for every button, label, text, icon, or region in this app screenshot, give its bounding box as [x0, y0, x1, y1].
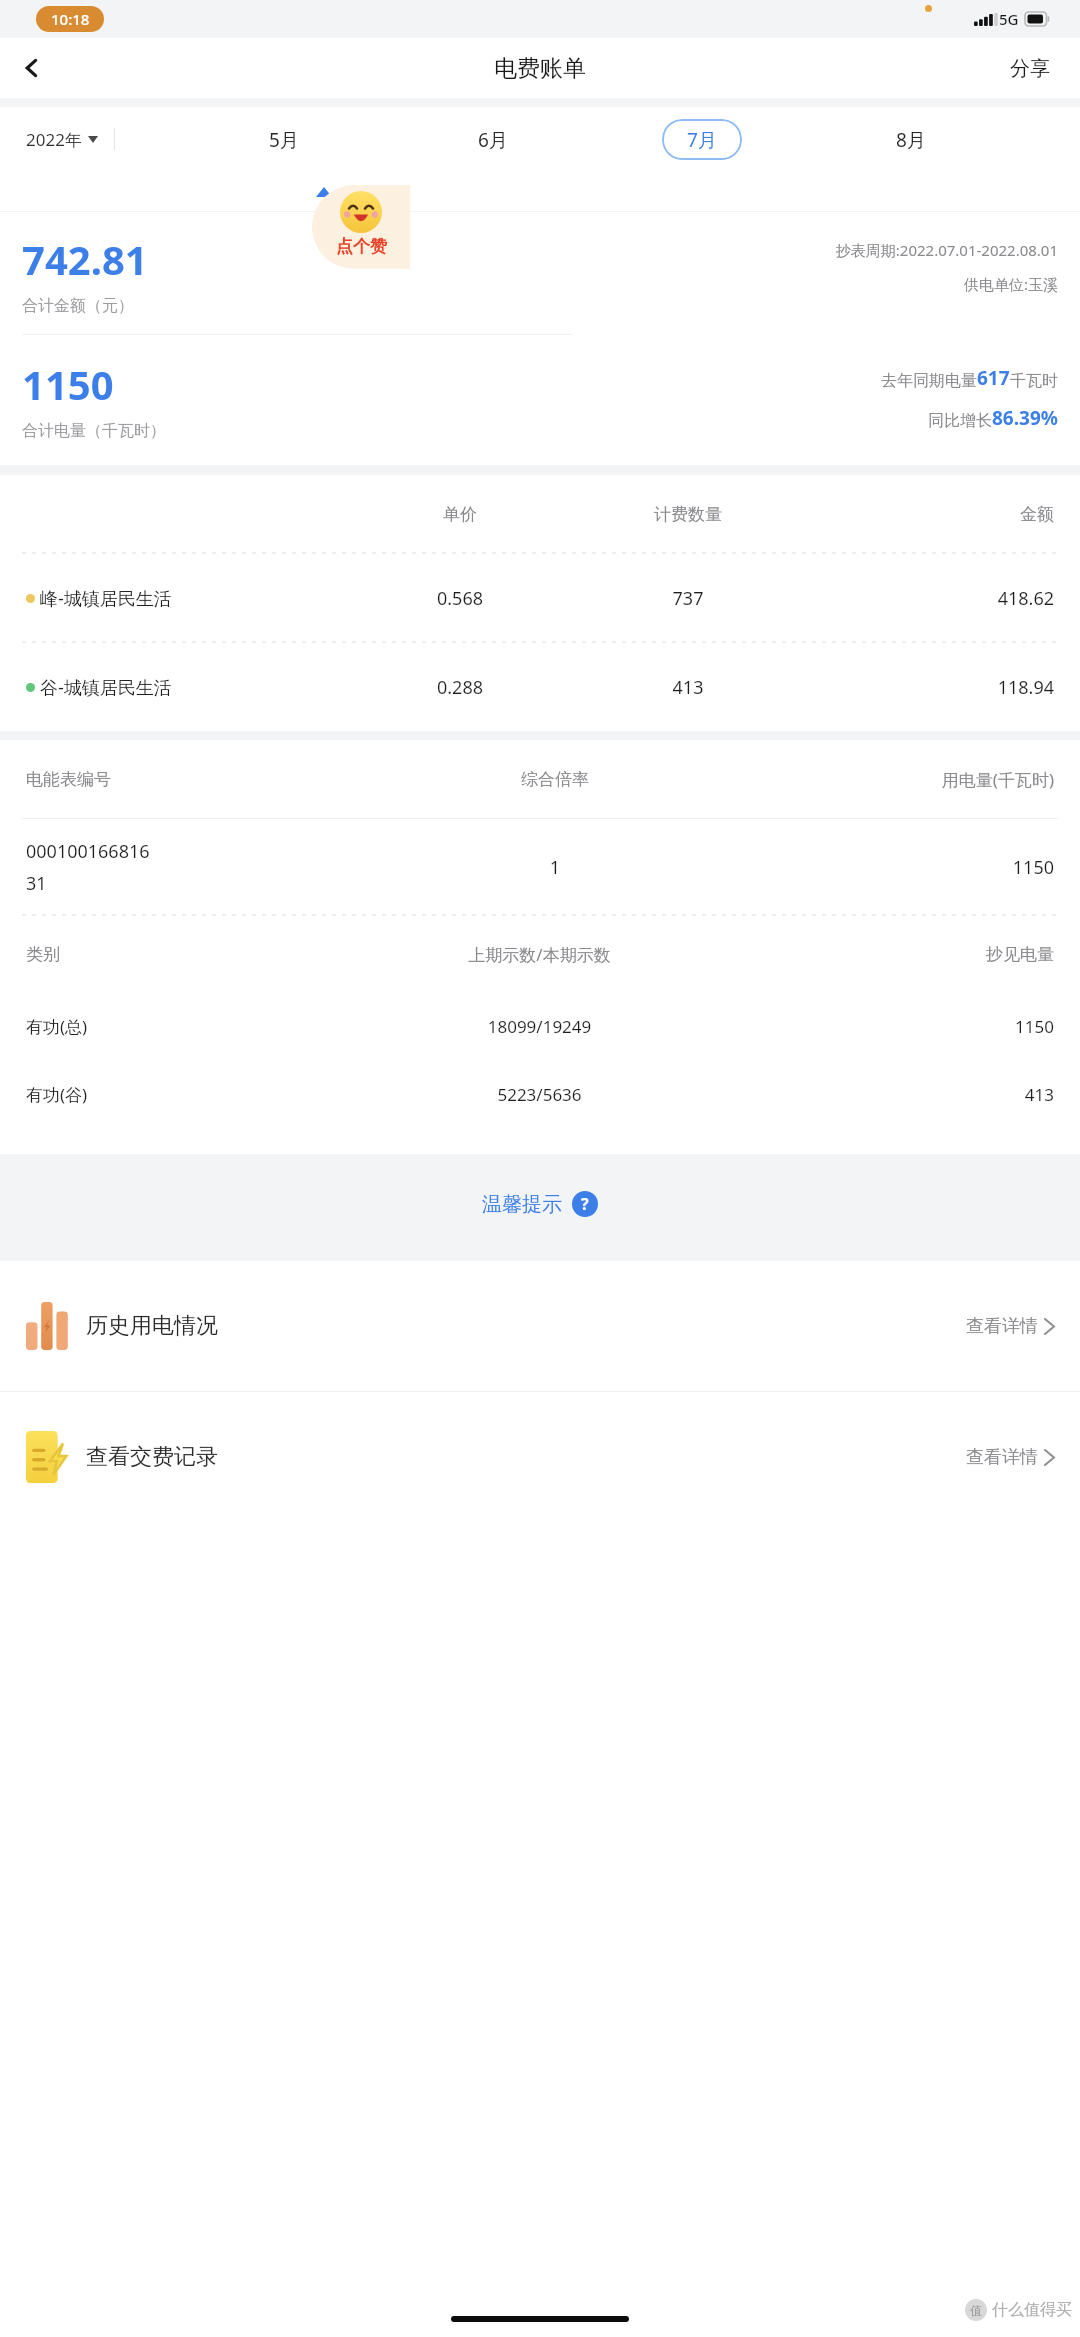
button[interactable]: 5月 — [244, 119, 324, 160]
staticText: 查看交费记录 — [86, 1443, 218, 1471]
staticText: 1150 — [22, 357, 114, 411]
button[interactable]: 2022年 — [22, 122, 102, 157]
staticText: 6月 — [478, 127, 508, 153]
staticText: 谷-城镇居民生活 — [40, 675, 172, 700]
staticText: 什么值得买 — [992, 2300, 1072, 2320]
staticText: 18099/19249 — [319, 1015, 760, 1038]
staticText: 抄表周期:2022.07.01-2022.08.01 — [835, 240, 1058, 260]
staticText: 电费账单 — [494, 54, 586, 83]
staticText: 2022年 — [26, 128, 82, 151]
staticText: 617 — [977, 365, 1010, 391]
staticText: 有功(谷) — [26, 1083, 319, 1106]
staticText: 742.81 — [22, 232, 148, 286]
staticText: 5G — [999, 9, 1019, 29]
button[interactable]: 分享 — [1000, 46, 1060, 91]
staticText: 有功(总) — [26, 1015, 319, 1038]
staticText: 合计金额（元） — [22, 296, 134, 316]
staticText: 抄见电量 — [760, 944, 1054, 965]
button[interactable]: 7月 — [662, 119, 742, 160]
staticText: 5月 — [269, 127, 299, 153]
staticText: 单价 — [354, 504, 566, 525]
button[interactable]: 谷-城镇居民生活 — [0, 643, 1080, 731]
staticText: 413 — [760, 1083, 1054, 1106]
staticText: 用电量(千瓦时) — [711, 768, 1054, 791]
staticText: ? — [581, 1193, 589, 1215]
button[interactable]: 点个赞 — [312, 185, 410, 269]
staticText: 峰-城镇居民生活 — [40, 586, 172, 611]
staticText: 温馨提示 — [482, 1192, 562, 1217]
staticText: 综合倍率 — [399, 769, 711, 790]
staticText: 千瓦时 — [1010, 371, 1058, 391]
staticText: 7月 — [687, 127, 717, 153]
button[interactable]: 8月 — [871, 119, 951, 160]
staticText: 历史用电情况 — [86, 1312, 218, 1340]
staticText: 上期示数/本期示数 — [319, 943, 760, 966]
staticText: 000100166816 31 — [26, 839, 399, 895]
staticText: 1150 — [760, 1015, 1054, 1038]
staticText: 5223/5636 — [319, 1083, 760, 1106]
staticText: 类别 — [26, 944, 319, 965]
staticText: 去年同期电量 — [881, 371, 977, 391]
staticText: 418.62 — [810, 586, 1054, 611]
button[interactable]: 温馨提示 — [468, 1181, 612, 1227]
staticText: 同比增长 — [928, 411, 992, 431]
staticText: 供电单位:玉溪 — [963, 274, 1058, 294]
staticText: 电能表编号 — [26, 769, 399, 790]
button[interactable]: 历史用电情况 — [0, 1261, 1080, 1391]
staticText: 分享 — [1010, 56, 1050, 81]
staticText: 10:18 — [51, 9, 90, 29]
staticText: 金额 — [810, 504, 1054, 525]
staticText: 1150 — [711, 855, 1054, 880]
staticText: 86.39% — [992, 405, 1058, 431]
staticText: 118.94 — [810, 675, 1054, 700]
button[interactable]: 查看交费记录 — [0, 1392, 1080, 1522]
staticText: 737 — [566, 586, 810, 611]
staticText: 8月 — [896, 127, 926, 153]
staticText: 查看详情 — [966, 1446, 1038, 1469]
staticText: 点个赞 — [336, 236, 387, 257]
button[interactable]: Back — [8, 44, 56, 92]
button[interactable]: 峰-城镇居民生活 — [0, 554, 1080, 642]
staticText: 计费数量 — [566, 504, 810, 525]
staticText: 413 — [566, 675, 810, 700]
staticText: 0.288 — [354, 675, 566, 700]
staticText: 0.568 — [354, 586, 566, 611]
staticText: 值 — [970, 2303, 982, 2318]
button[interactable]: 6月 — [453, 119, 533, 160]
staticText: 1 — [399, 855, 711, 880]
staticText: 查看详情 — [966, 1315, 1038, 1338]
staticText: 合计电量（千瓦时） — [22, 421, 166, 441]
